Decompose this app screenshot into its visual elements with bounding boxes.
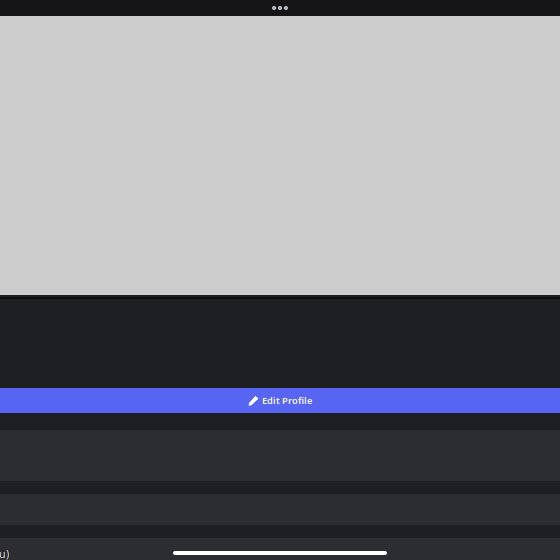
staticText: Edit Profile (262, 394, 312, 407)
button[interactable]: Edit Profile (0, 388, 560, 413)
staticText: Menu) (0, 547, 9, 560)
button[interactable]: More options (263, 0, 297, 16)
